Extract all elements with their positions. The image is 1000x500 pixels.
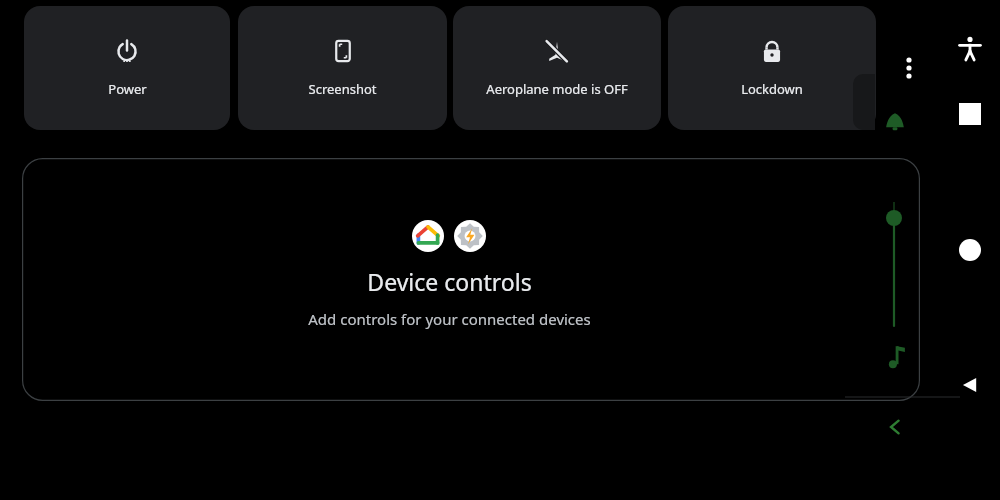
button[interactable]: Ringer mode <box>878 104 912 140</box>
staticText: Power <box>108 80 147 98</box>
button[interactable]: Back <box>950 365 990 405</box>
button[interactable]: Collapse <box>878 410 912 444</box>
staticText: Aeroplane mode is OFF <box>486 80 628 98</box>
button[interactable]: Screenshot <box>238 6 447 130</box>
staticText: Lockdown <box>741 80 803 98</box>
button[interactable]: Lockdown <box>668 6 876 130</box>
button[interactable]: Recents <box>950 94 990 134</box>
staticText: Add controls for your connected devices <box>308 309 591 329</box>
staticText: Screenshot <box>308 80 377 98</box>
button[interactable] <box>22 158 920 401</box>
button[interactable]: Home <box>950 230 990 270</box>
button[interactable]: Aeroplane mode is OFF <box>453 6 661 130</box>
staticText: Device controls <box>367 266 532 297</box>
button[interactable]: Accessibility <box>950 30 990 68</box>
button[interactable]: More options <box>893 44 925 92</box>
button[interactable]: Power <box>24 6 230 130</box>
